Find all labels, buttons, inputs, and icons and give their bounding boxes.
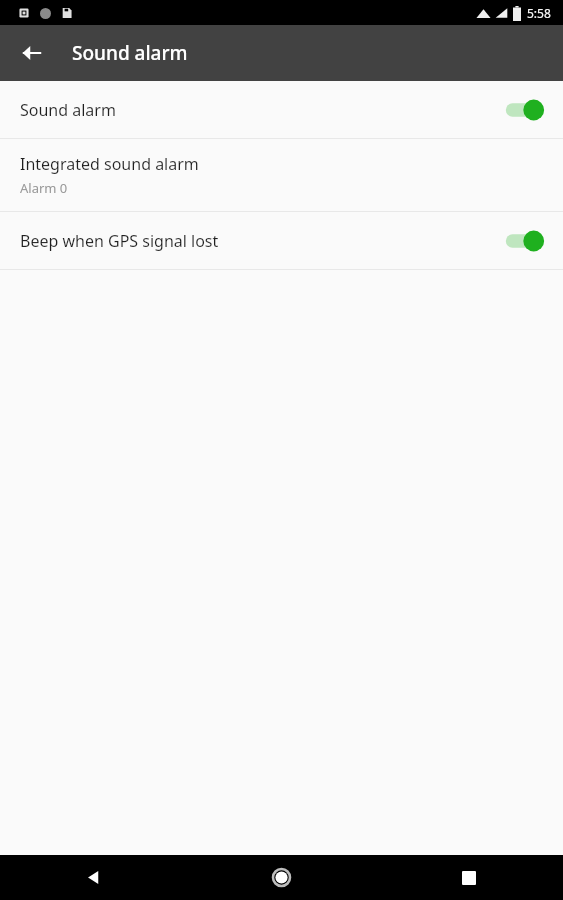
- button[interactable]: Toggle: [501, 97, 545, 123]
- button[interactable]: Home: [187, 855, 375, 900]
- button[interactable]: Back: [0, 855, 187, 900]
- button[interactable]: Recents: [375, 855, 563, 900]
- staticText: Beep when GPS signal lost: [20, 230, 501, 252]
- button[interactable]: Beep when GPS signal lost: [0, 212, 563, 269]
- button[interactable]: Sound alarm: [0, 81, 563, 138]
- staticText: Sound alarm: [72, 40, 188, 66]
- button[interactable]: Back: [8, 29, 56, 77]
- staticText: Alarm 0: [20, 179, 68, 197]
- staticText: Integrated sound alarm: [20, 153, 199, 175]
- staticText: 5:58: [527, 5, 551, 21]
- staticText: Sound alarm: [20, 99, 501, 121]
- button[interactable]: Toggle: [501, 228, 545, 254]
- button[interactable]: Integrated sound alarm: [0, 139, 563, 211]
